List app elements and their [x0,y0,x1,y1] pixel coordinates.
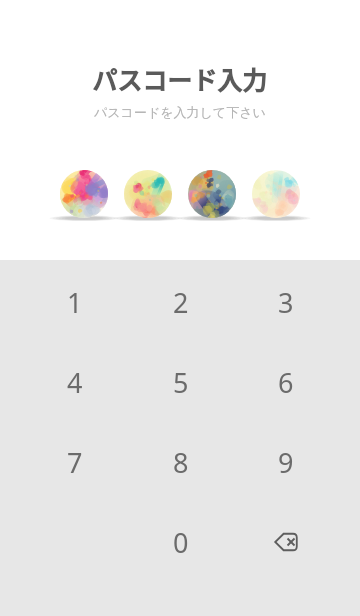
button[interactable]: 1 [22,262,128,342]
staticText: 1 [67,284,83,321]
staticText: 3 [278,284,294,321]
staticText: 9 [278,444,294,481]
button[interactable]: 7 [22,422,128,502]
staticText: パスコード入力 [92,61,268,97]
button[interactable]: 4 [22,342,128,422]
staticText: 2 [173,284,189,321]
staticText: 7 [67,444,83,481]
staticText: 8 [173,444,189,481]
staticText: 0 [173,524,189,561]
button[interactable]: Backspace [233,502,338,582]
staticText: 4 [67,364,83,401]
button[interactable]: 5 [128,342,233,422]
other: Backspace [272,528,300,556]
staticText: パスコードを入力して下さい [94,104,266,120]
button[interactable]: 0 [128,502,233,582]
button[interactable]: 9 [233,422,338,502]
button[interactable]: 6 [233,342,338,422]
staticText: 6 [278,364,294,401]
button[interactable]: 3 [233,262,338,342]
button[interactable]: 8 [128,422,233,502]
button[interactable]: 2 [128,262,233,342]
staticText: 5 [173,364,189,401]
